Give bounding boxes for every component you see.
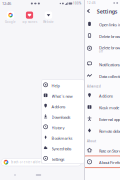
staticText: Synced tabs xyxy=(51,146,71,151)
staticText: Google xyxy=(5,20,16,24)
staticText: Advanced xyxy=(87,85,101,88)
button[interactable]: Add-ons xyxy=(84,89,120,101)
staticText: Top stories xyxy=(22,20,37,24)
button[interactable]: Kiosk mode xyxy=(84,101,120,113)
button[interactable]: Help xyxy=(41,79,84,90)
button[interactable]: Settings xyxy=(41,153,84,163)
staticText: About xyxy=(87,139,96,143)
button[interactable]: Open links in apps xyxy=(84,18,120,30)
staticText: Remote debug xyxy=(99,128,120,134)
button[interactable]: External apps xyxy=(84,113,120,124)
staticText: Settings xyxy=(51,156,64,162)
staticText: Delete browsing data xyxy=(99,34,120,39)
button[interactable]: Data collection xyxy=(84,70,120,81)
staticText: Settings xyxy=(97,8,118,15)
button[interactable]: Top stories xyxy=(20,12,38,24)
staticText: Downloads xyxy=(51,114,70,120)
staticText: History xyxy=(51,125,64,130)
staticText: Add-ons xyxy=(51,104,65,109)
staticText: Kiosk mode xyxy=(99,105,119,110)
staticText: Help xyxy=(51,83,59,88)
staticText: Data collection xyxy=(99,74,120,79)
button[interactable]: Website xyxy=(39,12,57,24)
button[interactable]: Google xyxy=(1,12,19,24)
button[interactable]: Downloads xyxy=(41,111,84,121)
staticText: What's new xyxy=(51,93,72,99)
button[interactable]: Back xyxy=(11,171,19,179)
staticText: About Firefox xyxy=(99,160,120,165)
button[interactable]: What's new xyxy=(41,90,84,100)
button[interactable]: Remote debug xyxy=(84,124,120,136)
button[interactable]: Delete browsing data xyxy=(84,30,120,41)
button[interactable]: Delete browsing xyxy=(84,41,120,58)
button[interactable]: Bookmarks xyxy=(41,132,84,142)
button[interactable]: Add-ons xyxy=(41,100,84,111)
button[interactable]: Rate on Store xyxy=(84,144,120,156)
button[interactable]: About Firefox xyxy=(84,156,120,168)
staticText: Website xyxy=(43,20,54,24)
staticText: Notifications xyxy=(99,62,120,67)
staticText: Rate on Store xyxy=(99,148,120,153)
staticText: 12:46 xyxy=(87,1,96,5)
staticText: Add-ons xyxy=(99,93,113,99)
staticText: 12:46 xyxy=(2,1,11,6)
button[interactable]: Back xyxy=(85,7,92,15)
staticText: External apps xyxy=(99,117,120,122)
button[interactable]: Synced tabs xyxy=(41,142,84,153)
staticText: Search or enter address xyxy=(11,160,43,164)
staticText: Bookmarks xyxy=(51,135,72,141)
button[interactable]: History xyxy=(41,121,84,132)
staticText: Open links in apps xyxy=(99,22,120,27)
button[interactable]: Notifications xyxy=(84,58,120,70)
button[interactable]: Search or enter address xyxy=(1,158,81,166)
button[interactable]: Home xyxy=(33,171,43,179)
staticText: off xyxy=(99,50,103,53)
staticText: 100% xyxy=(73,2,81,5)
staticText: Delete browsing xyxy=(99,45,120,50)
